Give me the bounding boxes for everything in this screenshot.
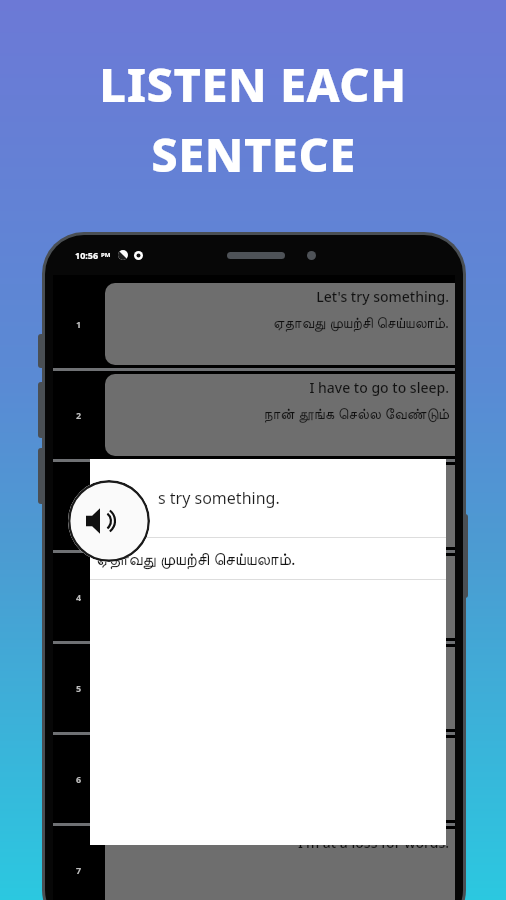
staticText: 5 [76, 682, 82, 694]
button[interactable]: 2 [53, 371, 455, 459]
button[interactable]: 3 [53, 462, 455, 550]
staticText: I'm at a loss for words. [298, 833, 449, 852]
staticText: I have to go to sleep. [309, 378, 449, 397]
button[interactable]: 5 [53, 644, 455, 732]
staticText: s try something. [158, 487, 280, 509]
button[interactable]: 6 [53, 735, 455, 823]
staticText: 2 [76, 409, 82, 421]
staticText: SENTECE [151, 122, 356, 186]
staticText: LISTEN EACH [99, 52, 407, 116]
button[interactable]: ஏதாவது முயற்சி செய்யலாம். [90, 538, 446, 579]
button[interactable]: 1 [53, 280, 455, 368]
button[interactable]: 7 [53, 826, 455, 900]
staticText: 10:56 [75, 249, 99, 261]
staticText: 3 [76, 500, 82, 512]
staticText: 7 [76, 864, 82, 876]
staticText: PM [101, 251, 111, 259]
button[interactable]: s try something. [90, 459, 446, 537]
staticText: 1 [76, 318, 82, 330]
staticText: ஏதாவது முயற்சி செய்யலாம். [96, 547, 296, 570]
button[interactable]: 4 [53, 553, 455, 641]
staticText: 6 [76, 773, 82, 785]
staticText: ஏதாவது முயற்சி செய்யலாம். [272, 312, 449, 332]
staticText: 4 [76, 591, 82, 603]
staticText: நான் தூங்க செல்ல வேண்டும் [263, 403, 449, 423]
staticText: Let's try something. [316, 287, 449, 306]
button[interactable]: Play audio [68, 480, 150, 562]
